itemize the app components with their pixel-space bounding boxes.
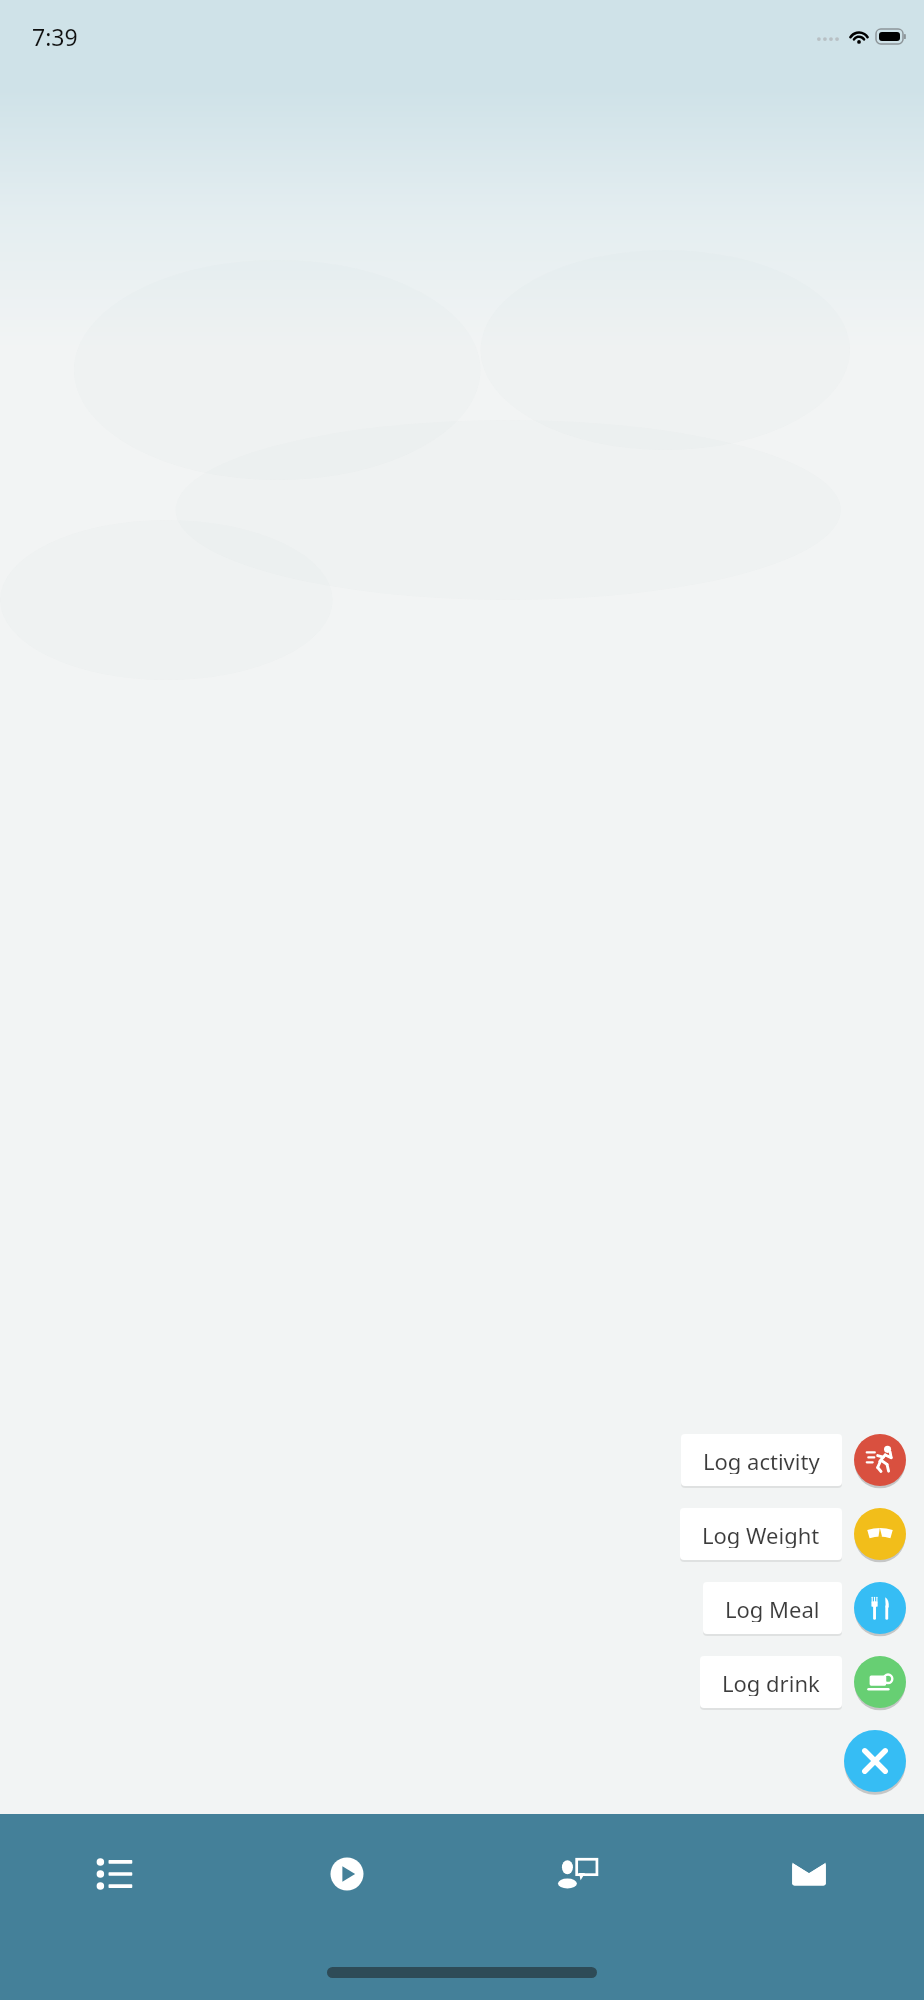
staticText: Log drink xyxy=(722,1668,820,1696)
staticText: Log activity xyxy=(703,1446,820,1474)
button[interactable]: Log Meal xyxy=(854,1582,906,1634)
button[interactable]: Mail xyxy=(693,1814,924,1934)
button[interactable]: Play xyxy=(231,1814,462,1934)
button[interactable]: Log drink xyxy=(854,1656,906,1708)
button[interactable]: Log Weight xyxy=(680,1508,906,1560)
button[interactable]: Log Weight xyxy=(854,1508,906,1560)
button[interactable]: Log drink xyxy=(700,1656,906,1708)
button[interactable]: Contacts xyxy=(462,1814,693,1934)
staticText: Log Meal xyxy=(725,1594,820,1622)
button[interactable]: Log activity xyxy=(854,1434,906,1486)
button[interactable]: Close menu xyxy=(844,1730,906,1792)
staticText: 7:39 xyxy=(32,21,78,52)
button[interactable]: Lists xyxy=(0,1814,231,1934)
button[interactable]: Log Meal xyxy=(703,1582,906,1634)
staticText: Log Weight xyxy=(702,1520,820,1548)
button[interactable]: Log activity xyxy=(681,1434,906,1486)
